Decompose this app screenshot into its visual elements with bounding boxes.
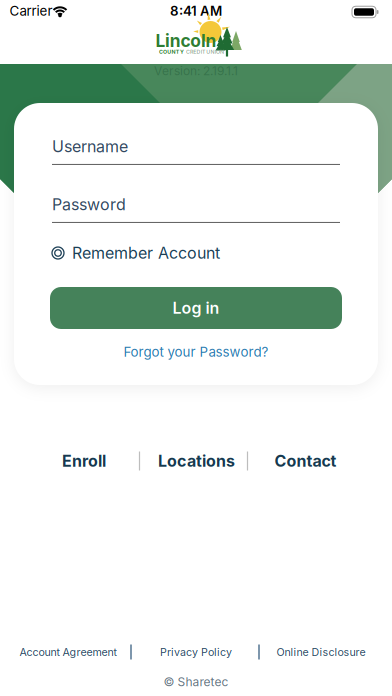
button[interactable]: Privacy Policy	[160, 646, 232, 658]
staticText: Log in	[172, 299, 219, 317]
staticText: Forgot your Password?	[123, 344, 268, 360]
staticText: CREDIT UNION	[186, 49, 224, 55]
staticText: COUNTY	[159, 49, 184, 55]
button[interactable]: Locations	[158, 452, 235, 470]
button[interactable]: Forgot your Password?	[123, 344, 268, 360]
staticText: Carrier	[9, 3, 52, 19]
staticText: Lincoln	[155, 31, 217, 51]
staticText: Version: 2.19.1.1	[154, 64, 238, 78]
staticText: Enroll	[62, 452, 106, 470]
button[interactable]: Account Agreement	[19, 646, 116, 658]
staticText: Username	[52, 137, 128, 156]
button[interactable]: Online Disclosure	[276, 646, 365, 658]
staticText: Remember Account	[72, 244, 220, 262]
staticText: Contact	[274, 452, 336, 470]
staticText: Password	[52, 195, 126, 214]
button[interactable]: Password	[52, 196, 340, 222]
button[interactable]: Contact	[274, 452, 336, 470]
button[interactable]: Remember Account	[52, 244, 340, 262]
staticText: 8:41 AM	[170, 3, 222, 19]
staticText: Privacy Policy	[160, 646, 232, 658]
staticText: © Sharetec	[163, 675, 228, 689]
staticText: Online Disclosure	[276, 646, 365, 658]
button[interactable]: Log in	[50, 287, 342, 329]
button[interactable]: Username	[52, 138, 340, 164]
staticText: Account Agreement	[19, 646, 116, 658]
staticText: Locations	[158, 452, 235, 470]
button[interactable]: Enroll	[62, 452, 106, 470]
